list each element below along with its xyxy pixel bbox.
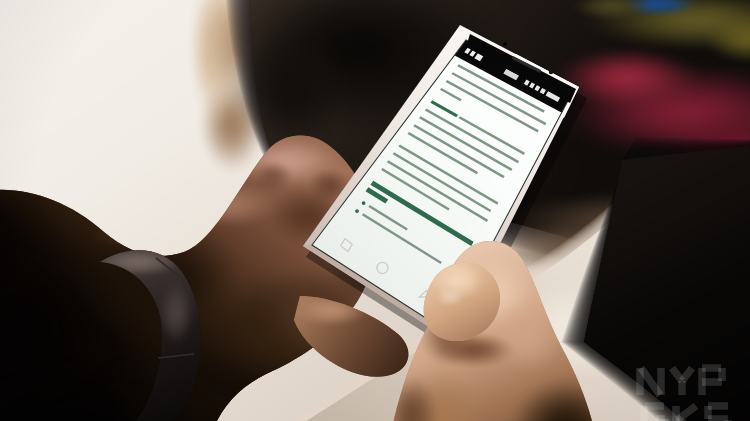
button[interactable]: Photo of a hand holding a smartphone sho… xyxy=(0,0,750,421)
